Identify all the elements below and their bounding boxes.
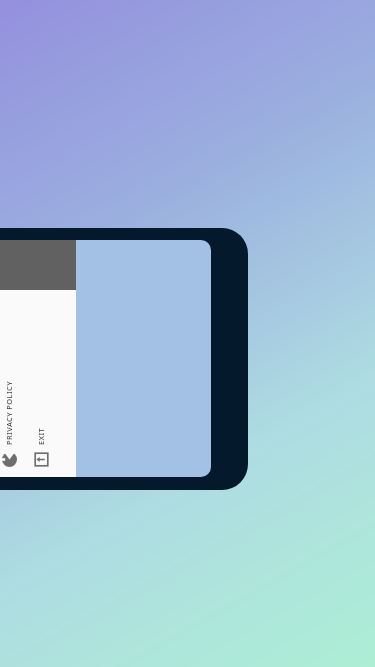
- button[interactable]: EXIT: [30, 290, 52, 477]
- button[interactable]: PRIVACY POLICY: [0, 290, 20, 477]
- staticText: PRIVACY POLICY: [4, 381, 14, 445]
- staticText: EXIT: [36, 427, 46, 445]
